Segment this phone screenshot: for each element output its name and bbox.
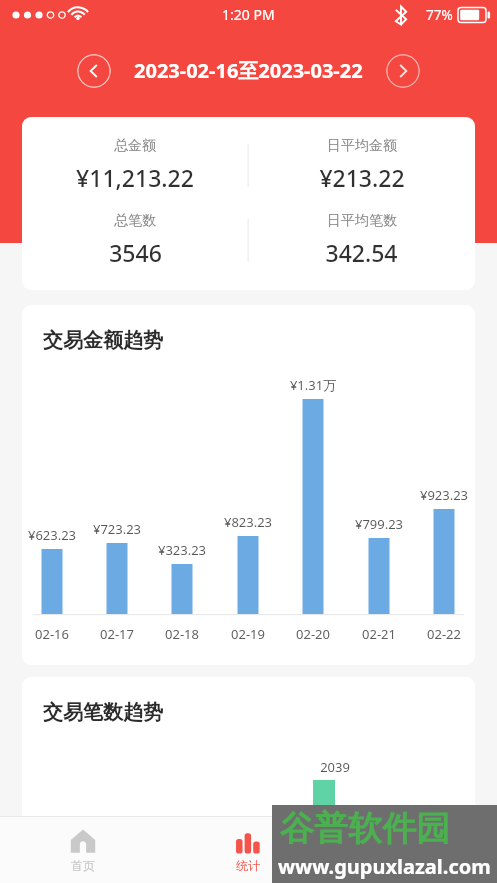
staticText: 交易笔数趋势 [43, 700, 163, 725]
staticText: ¥323.23 [146, 541, 218, 559]
staticText: ¥1.31万 [277, 376, 349, 394]
staticText: ¥11,213.22 [76, 162, 194, 193]
button[interactable]: 总金额 [22, 117, 475, 290]
button[interactable]: Next period [386, 54, 420, 88]
staticText: www.gupuxlazal.com [278, 853, 491, 880]
staticText: ¥623.23 [22, 526, 88, 544]
staticText: ¥799.23 [343, 515, 415, 533]
staticText: ¥823.23 [212, 513, 284, 531]
staticText: 2023-02-16至2023-03-22 [134, 57, 363, 84]
staticText: 总笔数 [114, 212, 156, 230]
staticText: 342.54 [325, 237, 398, 268]
button[interactable]: 统计 [165, 816, 331, 883]
staticText: ¥923.23 [408, 486, 475, 504]
staticText: 3546 [109, 237, 162, 268]
staticText: 谷普软件园 [280, 807, 450, 850]
staticText: 02-21 [343, 625, 415, 643]
staticText: 02-20 [277, 625, 349, 643]
button[interactable]: Previous period [77, 54, 111, 88]
staticText: 日平均笔数 [327, 212, 397, 230]
staticText: ¥723.23 [81, 520, 153, 538]
staticText: 首页 [71, 858, 95, 873]
staticText: 02-16 [22, 625, 88, 643]
button[interactable]: 首页 [0, 816, 165, 883]
staticText: 2039 [299, 758, 371, 776]
staticText: 02-17 [81, 625, 153, 643]
staticText: 日平均金额 [327, 137, 397, 155]
staticText: 总金额 [114, 137, 156, 155]
staticText: 1:20 PM [222, 5, 275, 24]
staticText: 77% [426, 6, 453, 24]
staticText: 02-18 [146, 625, 218, 643]
staticText: 交易金额趋势 [43, 328, 163, 353]
staticText: 统计 [236, 858, 260, 873]
staticText: 02-22 [408, 625, 475, 643]
staticText: 02-19 [212, 625, 284, 643]
staticText: ¥213.22 [319, 162, 405, 193]
button[interactable]: 交易金额趋势 [22, 305, 475, 665]
button[interactable]: 交易笔数趋势 [22, 677, 475, 883]
